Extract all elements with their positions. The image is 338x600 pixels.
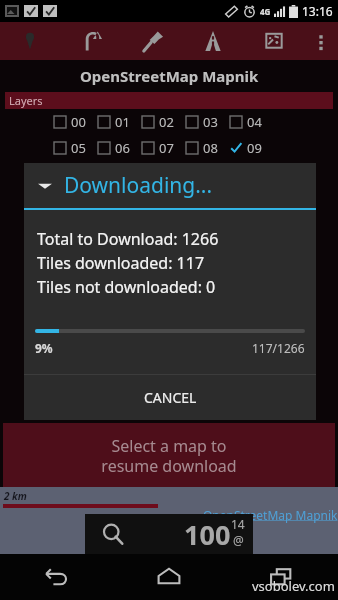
- button[interactable]: 07: [142, 139, 186, 157]
- button[interactable]: Back: [0, 554, 112, 600]
- button[interactable]: Select a map to resume download: [3, 423, 335, 487]
- staticText: Downloading...: [64, 171, 213, 200]
- staticText: 4G: [260, 6, 271, 17]
- staticText: Total to Download: 1266: [37, 228, 219, 250]
- staticText: OpenStreetMap Mapnik: [80, 66, 259, 86]
- staticText: Layers: [9, 93, 43, 108]
- button[interactable]: 100: [85, 514, 253, 554]
- button[interactable]: More options: [304, 22, 338, 60]
- staticText: 14: [231, 516, 245, 532]
- staticText: @: [233, 532, 244, 548]
- staticText: 04: [247, 113, 262, 131]
- button[interactable]: Road style: [182, 22, 243, 60]
- staticText: 117/1266: [252, 340, 305, 356]
- staticText: 01: [115, 113, 130, 131]
- staticText: 06: [115, 139, 130, 157]
- button[interactable]: OpenStreetMap Mapnik: [203, 507, 338, 523]
- staticText: Tiles downloaded: 117: [37, 252, 205, 274]
- staticText: 07: [159, 139, 174, 157]
- staticText: 9%: [35, 340, 53, 356]
- staticText: 2 km: [4, 489, 27, 503]
- staticText: 13:16: [302, 3, 333, 19]
- button[interactable]: 05: [54, 139, 98, 157]
- button[interactable]: 09: [230, 139, 274, 157]
- button[interactable]: 04: [230, 113, 274, 131]
- button[interactable]: CANCEL: [24, 375, 316, 420]
- staticText: 00: [71, 113, 86, 131]
- button[interactable]: Home: [112, 554, 225, 600]
- button[interactable]: My location: [0, 22, 60, 60]
- staticText: CANCEL: [144, 388, 197, 407]
- staticText: 02: [159, 113, 174, 131]
- staticText: Select a map to resume download: [101, 435, 237, 476]
- button[interactable]: Directions: [60, 22, 121, 60]
- staticText: 05: [71, 139, 86, 157]
- button[interactable]: Map layers: [243, 22, 304, 60]
- button[interactable]: 00: [54, 113, 98, 131]
- button[interactable]: 02: [142, 113, 186, 131]
- staticText: Tiles not downloaded: 0: [37, 276, 216, 298]
- staticText: 03: [203, 113, 218, 131]
- staticText: 08: [203, 139, 218, 157]
- button[interactable]: 03: [186, 113, 230, 131]
- staticText: vsobolev.com: [252, 577, 335, 595]
- staticText: 100: [184, 516, 231, 553]
- button[interactable]: Add marker: [121, 22, 182, 60]
- staticText: 09: [247, 139, 262, 157]
- button[interactable]: Recents: [225, 554, 338, 600]
- button[interactable]: 06: [98, 139, 142, 157]
- button[interactable]: 08: [186, 139, 230, 157]
- button[interactable]: 01: [98, 113, 142, 131]
